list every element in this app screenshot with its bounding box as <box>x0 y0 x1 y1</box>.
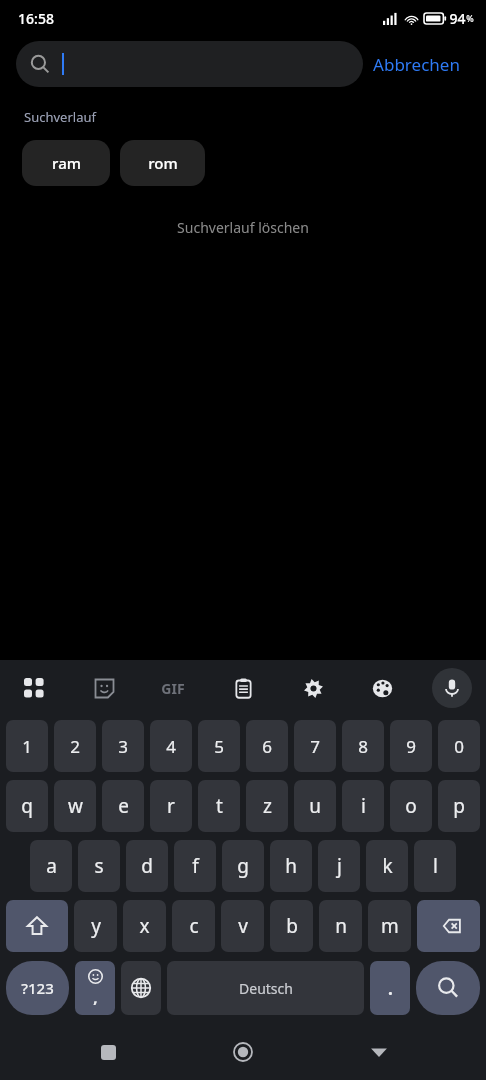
button[interactable]: f <box>174 840 216 892</box>
button[interactable]: Backspace <box>417 900 480 952</box>
staticText: GIF <box>161 679 185 698</box>
staticText: 2 <box>70 735 80 758</box>
staticText: t <box>216 793 223 819</box>
button[interactable]: 2 <box>54 720 96 772</box>
button[interactable]: n <box>319 900 362 952</box>
staticText: v <box>238 913 248 939</box>
staticText: k <box>382 853 393 879</box>
button[interactable]: Clipboard <box>223 668 263 708</box>
button[interactable]: rom <box>120 140 205 186</box>
button[interactable]: e <box>102 780 144 832</box>
staticText: l <box>433 853 438 879</box>
staticText: y <box>91 913 101 939</box>
staticText: u <box>309 793 321 819</box>
staticText: 1 <box>22 735 32 758</box>
button[interactable]: y <box>74 900 117 952</box>
button[interactable]: Voice input <box>432 668 472 708</box>
button[interactable]: Search <box>416 961 480 1015</box>
staticText: rom <box>148 153 178 173</box>
button[interactable]: Change language <box>121 961 161 1015</box>
button[interactable]: w <box>54 780 96 832</box>
staticText: 94 <box>449 9 466 28</box>
button[interactable]: Theme <box>362 668 402 708</box>
button[interactable] <box>16 41 363 87</box>
staticText: n <box>335 913 347 939</box>
staticText: 5 <box>214 735 224 758</box>
button[interactable]: Suchverlauf löschen <box>169 214 317 241</box>
staticText: r <box>167 793 175 819</box>
button[interactable]: b <box>270 900 313 952</box>
button[interactable]: Home <box>215 1024 271 1080</box>
button[interactable]: i <box>342 780 384 832</box>
staticText: s <box>94 853 104 879</box>
staticText: ram <box>52 153 81 173</box>
button[interactable]: Shift <box>6 900 68 952</box>
staticText: d <box>141 853 153 879</box>
button[interactable]: p <box>438 780 480 832</box>
staticText: h <box>285 853 297 879</box>
button[interactable]: 4 <box>150 720 192 772</box>
button[interactable]: Sticker <box>84 668 124 708</box>
button[interactable]: q <box>6 780 48 832</box>
staticText: % <box>466 12 474 24</box>
button[interactable]: x <box>123 900 166 952</box>
staticText: w <box>68 793 83 819</box>
button[interactable]: Settings <box>293 668 333 708</box>
button[interactable]: z <box>246 780 288 832</box>
button[interactable]: Hide keyboard <box>351 1024 407 1080</box>
button[interactable]: s <box>78 840 120 892</box>
button[interactable]: 7 <box>294 720 336 772</box>
staticText: o <box>405 793 417 819</box>
button[interactable]: 0 <box>438 720 480 772</box>
staticText: p <box>453 793 465 819</box>
staticText: e <box>118 793 129 819</box>
button[interactable]: j <box>318 840 360 892</box>
staticText: f <box>192 853 199 879</box>
staticText: 7 <box>310 735 320 758</box>
button[interactable]: m <box>368 900 411 952</box>
button[interactable]: 1 <box>6 720 48 772</box>
button[interactable]: l <box>414 840 456 892</box>
button[interactable]: Apps <box>14 668 54 708</box>
button[interactable]: 3 <box>102 720 144 772</box>
staticText: Deutsch <box>239 979 293 998</box>
staticText: 16:58 <box>18 9 54 28</box>
staticText: z <box>263 793 272 819</box>
staticText: Abbrechen <box>373 53 460 76</box>
button[interactable]: GIF <box>153 668 193 708</box>
button[interactable]: . <box>370 961 410 1015</box>
staticText: x <box>139 913 150 939</box>
button[interactable]: Abbrechen <box>363 47 470 82</box>
button[interactable]: 5 <box>198 720 240 772</box>
staticText: q <box>21 793 33 819</box>
staticText: ?123 <box>21 978 54 998</box>
staticText: 8 <box>358 735 368 758</box>
button[interactable]: ?123 <box>6 961 69 1015</box>
staticText: j <box>337 853 342 879</box>
button[interactable]: 8 <box>342 720 384 772</box>
button[interactable]: Emoji and comma <box>75 961 115 1015</box>
staticText: 4 <box>166 735 176 758</box>
button[interactable]: Deutsch <box>167 961 364 1015</box>
button[interactable]: h <box>270 840 312 892</box>
staticText: Suchverlauf <box>24 108 96 126</box>
button[interactable]: a <box>30 840 72 892</box>
button[interactable]: r <box>150 780 192 832</box>
staticText: 9 <box>406 735 416 758</box>
staticText: 0 <box>454 735 464 758</box>
button[interactable]: g <box>222 840 264 892</box>
button[interactable]: v <box>221 900 264 952</box>
staticText: 3 <box>118 735 128 758</box>
button[interactable]: 6 <box>246 720 288 772</box>
button[interactable]: c <box>172 900 215 952</box>
button[interactable]: o <box>390 780 432 832</box>
staticText: g <box>237 853 249 879</box>
button[interactable]: u <box>294 780 336 832</box>
button[interactable]: k <box>366 840 408 892</box>
button[interactable]: 9 <box>390 720 432 772</box>
staticText: b <box>286 913 298 939</box>
button[interactable]: d <box>126 840 168 892</box>
button[interactable]: ram <box>22 140 110 186</box>
button[interactable]: t <box>198 780 240 832</box>
button[interactable]: Recents <box>80 1024 136 1080</box>
